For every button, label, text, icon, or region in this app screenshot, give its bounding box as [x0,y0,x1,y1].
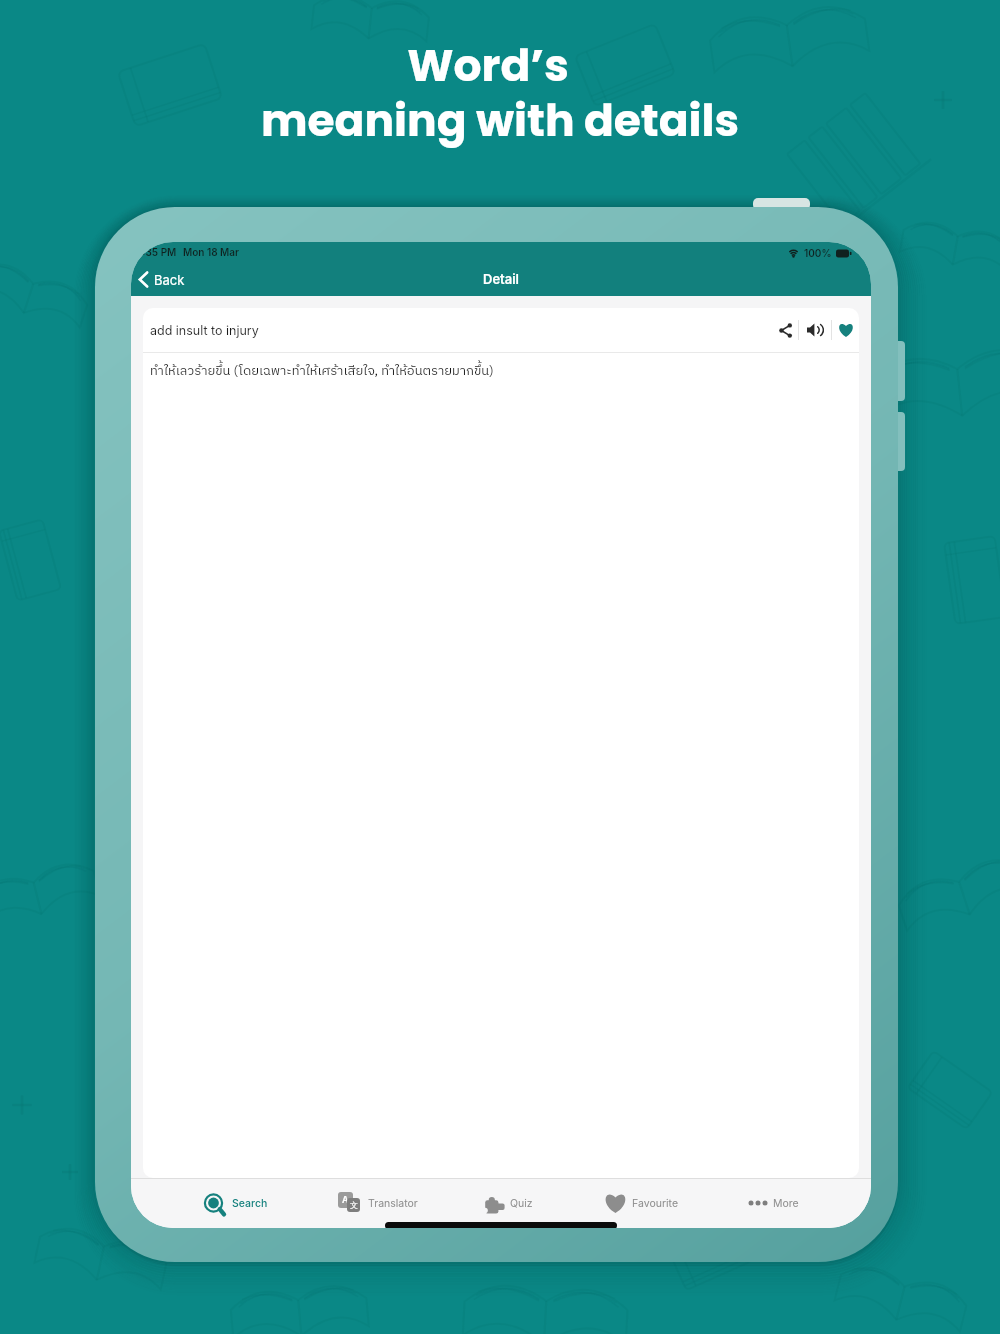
staticText: Favourite [632,1197,678,1210]
staticText: meaning with details [0,90,1000,152]
staticText: ทำให้เลวร้ายขึ้น (โดยเฉพาะทำให้เศร้าเสีย… [150,360,494,381]
staticText: add insult to injury [150,323,259,338]
staticText: Quiz [510,1197,533,1210]
button[interactable]: Favourite [604,1178,678,1228]
button[interactable] [832,308,859,352]
staticText: Mon 18 Mar [183,246,240,258]
staticText: 100% [804,247,832,259]
staticText: 文 [350,1200,358,1210]
button[interactable]: More [748,1178,799,1228]
staticText: Detail [131,271,871,287]
staticText: Translator [368,1197,418,1210]
button[interactable] [772,308,798,352]
button[interactable] [799,308,831,352]
staticText: A [342,1194,349,1205]
button[interactable]: Quiz [484,1178,533,1228]
staticText: Word’s [0,35,988,97]
button[interactable]: Search [204,1178,268,1228]
button[interactable]: A [338,1178,418,1228]
staticText: 5:35 PM [136,246,177,258]
staticText: Search [232,1197,268,1210]
staticText: More [773,1197,799,1210]
staticText: Back [154,272,185,288]
button[interactable]: Back [138,271,185,288]
